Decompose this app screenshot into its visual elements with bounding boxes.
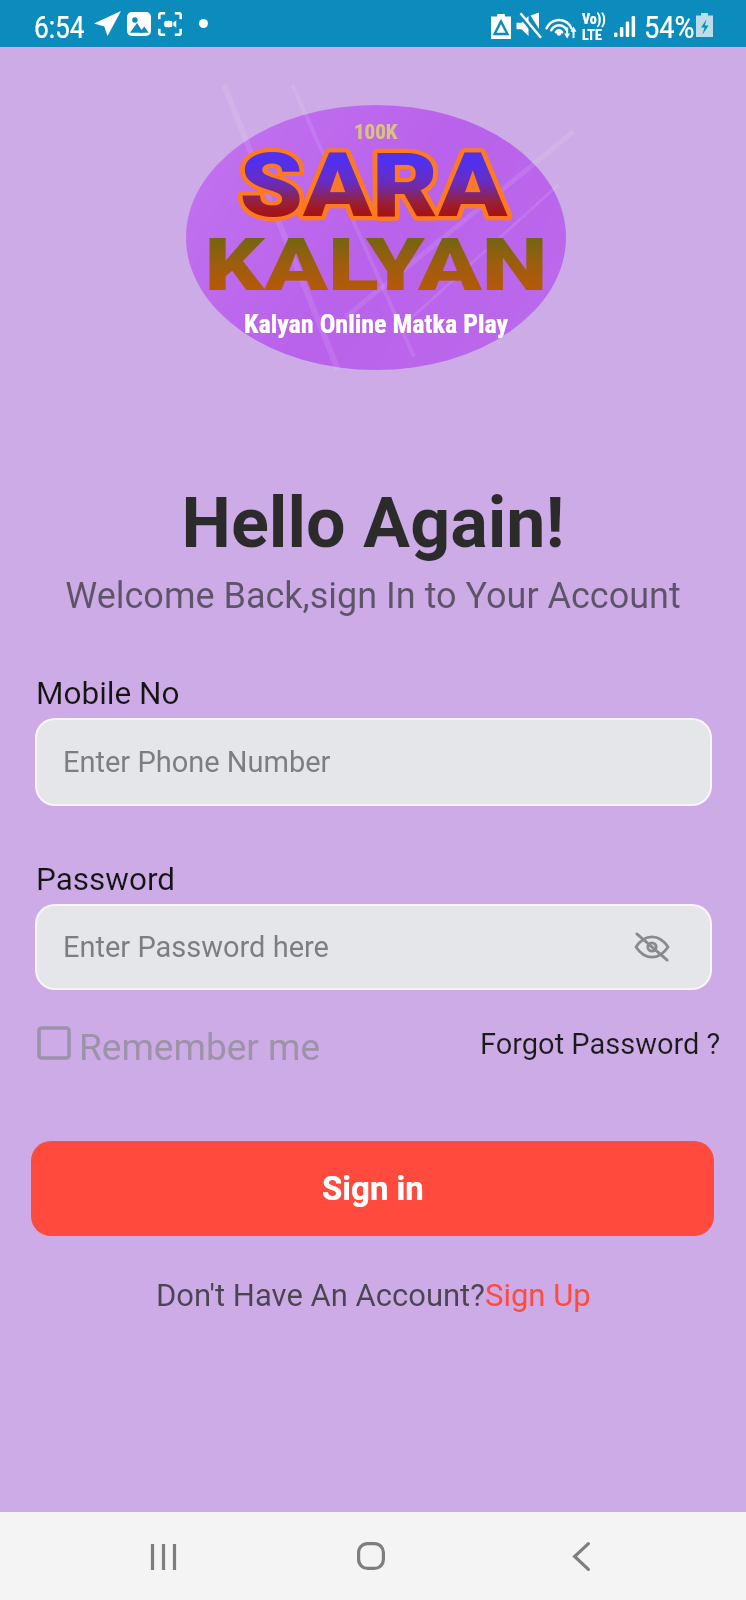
staticText: Don't Have An Account? [156, 1277, 485, 1313]
button[interactable]: Show password [624, 919, 680, 975]
staticText: Enter Password here [63, 930, 329, 964]
button[interactable]: Remember me [37, 1026, 321, 1060]
button[interactable]: Sign Up [485, 1277, 591, 1313]
staticText: LTE [582, 27, 602, 43]
staticText: 54% [644, 8, 695, 46]
staticText: KALYAN [204, 223, 548, 307]
staticText: Mobile No [36, 675, 180, 712]
button[interactable]: Enter Password here [35, 904, 712, 990]
staticText: SARA [239, 133, 508, 237]
button[interactable]: Sign in [31, 1141, 714, 1236]
staticText: Vo)) [582, 11, 606, 27]
staticText: Password [36, 861, 176, 898]
button[interactable]: Recent apps [138, 1532, 188, 1582]
staticText: Welcome Back,sign In to Your Account [0, 575, 746, 617]
staticText: 100K [354, 120, 398, 145]
button[interactable]: Enter Phone Number [35, 718, 712, 806]
button[interactable]: Home [346, 1531, 396, 1581]
staticText: Kalyan Online Matka Play [244, 309, 509, 339]
staticText: SARA [239, 133, 508, 237]
staticText: Enter Phone Number [63, 745, 331, 779]
staticText: Sign Up [485, 1277, 591, 1313]
staticText: Hello Again! [0, 482, 746, 564]
staticText: Sign in [322, 1169, 424, 1208]
button[interactable]: Back [556, 1531, 606, 1581]
staticText: Forgot Password ? [480, 1027, 721, 1061]
staticText: Remember me [79, 1026, 321, 1060]
staticText: 6:54 [34, 8, 85, 46]
button[interactable]: Forgot Password ? [480, 1026, 721, 1062]
